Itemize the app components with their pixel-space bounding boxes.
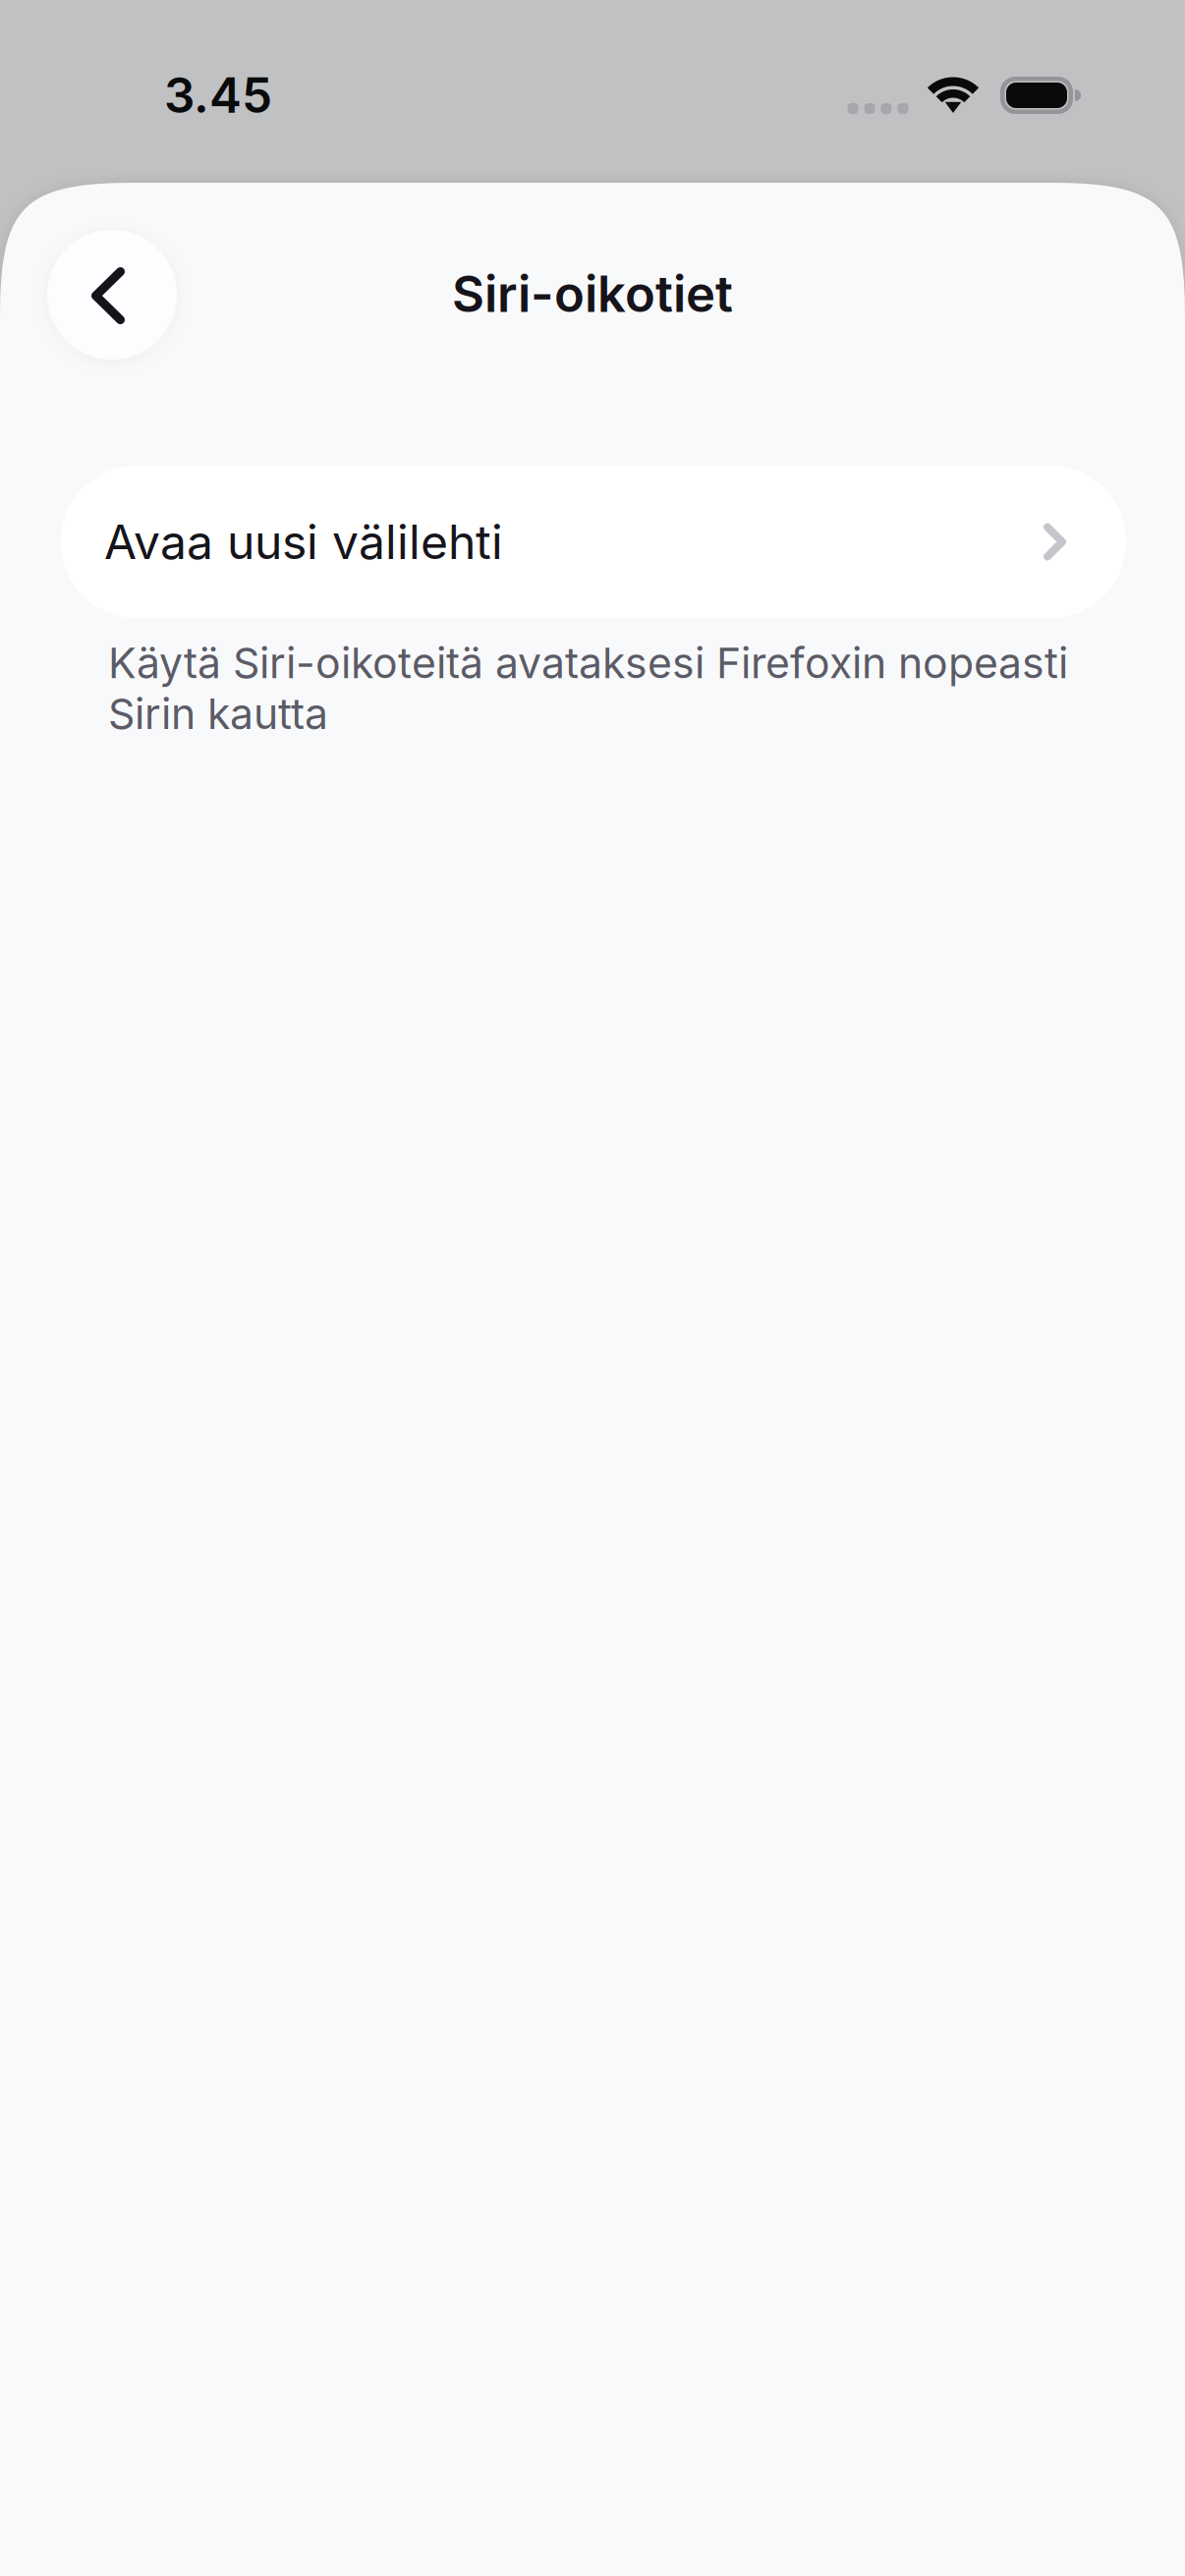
button[interactable]: Avaa uusi välilehti xyxy=(61,466,1126,618)
staticText: 3.45 xyxy=(164,66,272,124)
button[interactable]: Back xyxy=(47,230,177,360)
staticText: Käytä Siri-oikoteitä avataksesi Firefoxi… xyxy=(108,638,1068,739)
staticText: Avaa uusi välilehti xyxy=(104,513,503,570)
staticText: Siri-oikotiet xyxy=(452,264,733,324)
